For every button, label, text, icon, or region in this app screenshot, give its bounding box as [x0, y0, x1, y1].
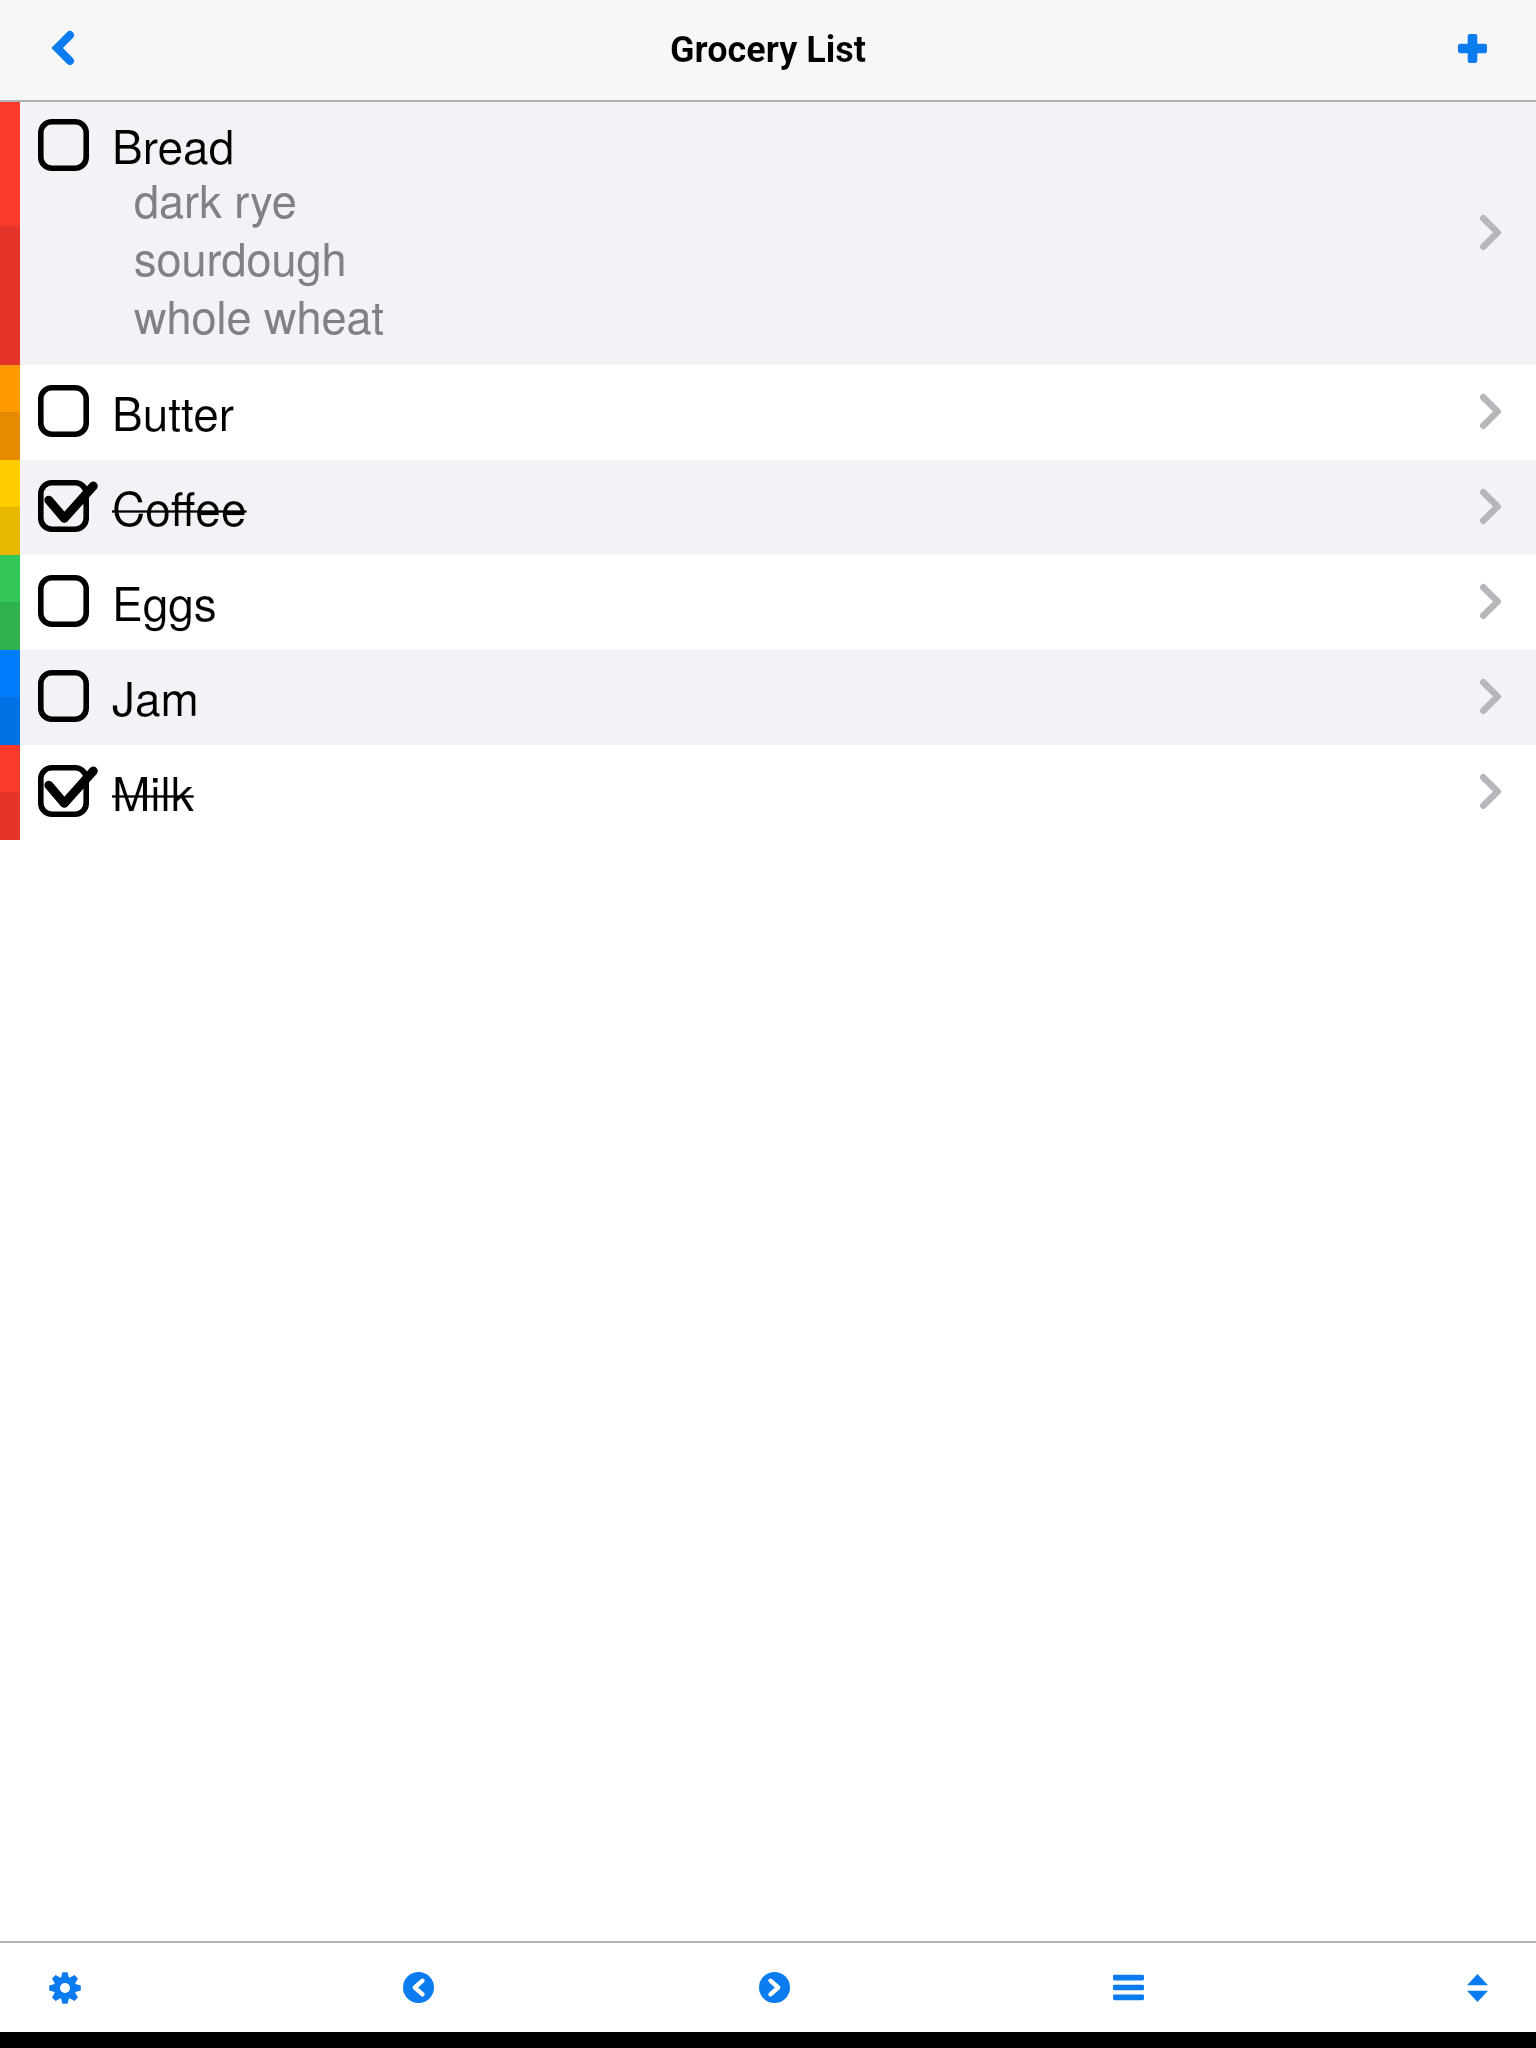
- button[interactable]: Milk: [0, 745, 1536, 840]
- button[interactable]: Butter: [0, 365, 1536, 460]
- staticText: whole wheat: [134, 282, 385, 346]
- button[interactable]: Settings: [21, 1943, 109, 2032]
- button[interactable]: Jam: [0, 650, 1536, 745]
- staticText: Milk: [112, 758, 194, 824]
- button[interactable]: Coffee: [0, 460, 1536, 555]
- staticText: Coffee: [112, 473, 247, 539]
- button[interactable]: Bread: [0, 102, 1536, 365]
- button[interactable]: Back: [20, 0, 106, 102]
- staticText: Eggs: [112, 568, 217, 634]
- staticText: Grocery List: [670, 29, 866, 71]
- button[interactable]: Add item: [1429, 0, 1515, 102]
- button[interactable]: Previous: [374, 1943, 462, 2032]
- staticText: Jam: [112, 663, 199, 729]
- staticText: Butter: [112, 378, 235, 444]
- button[interactable]: Sort: [1433, 1943, 1521, 2032]
- staticText: dark rye: [134, 166, 297, 230]
- button[interactable]: Next: [730, 1943, 818, 2032]
- button[interactable]: Eggs: [0, 555, 1536, 650]
- staticText: sourdough: [134, 224, 347, 288]
- button[interactable]: Menu: [1084, 1943, 1172, 2032]
- staticText: Bread: [112, 111, 235, 177]
